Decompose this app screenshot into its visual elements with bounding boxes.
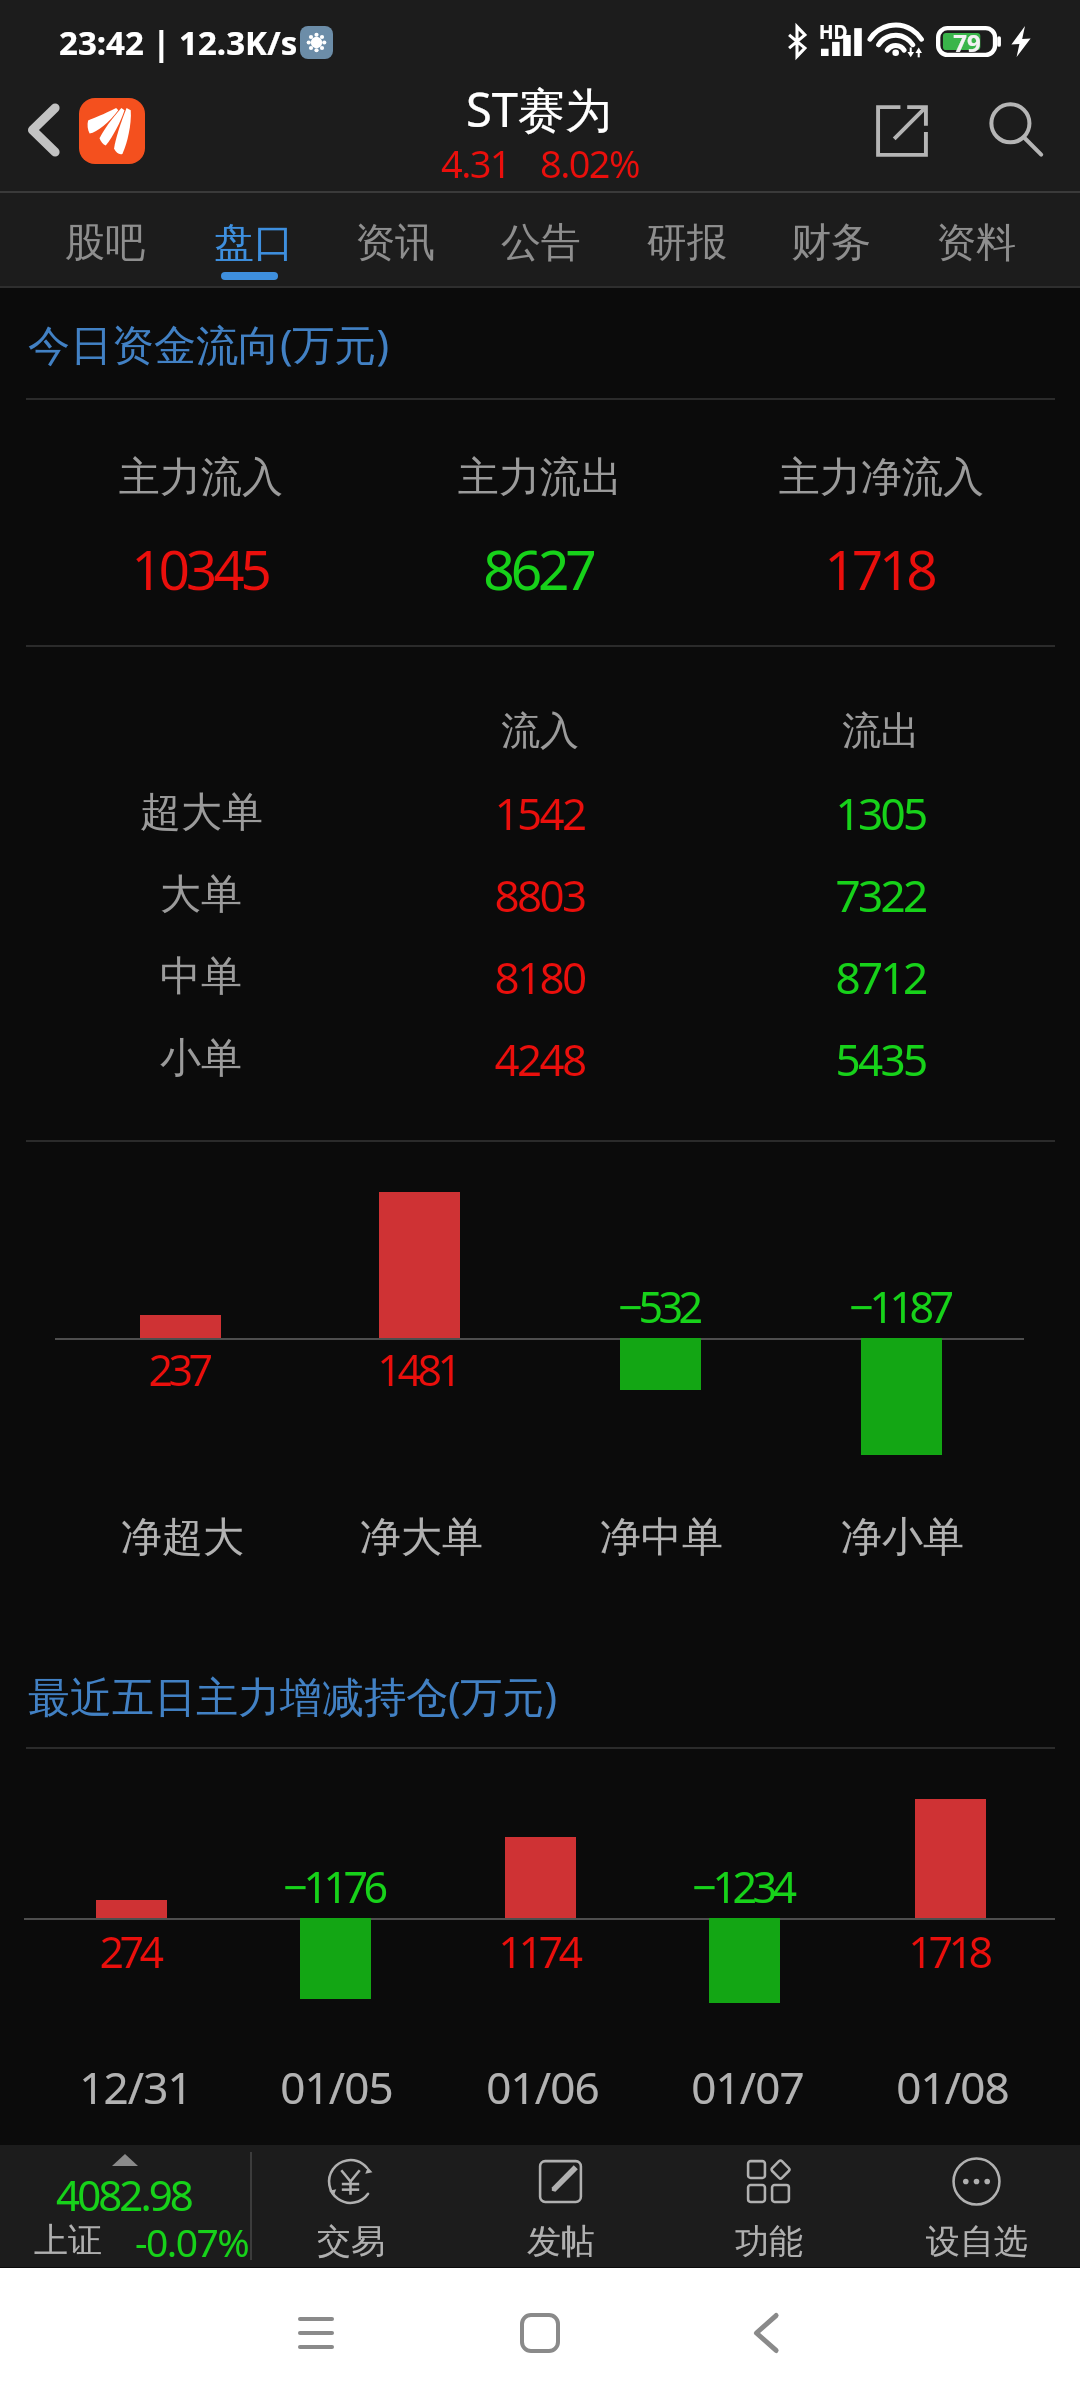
staticText: 交易 [317, 2220, 385, 2263]
staticText: 大单 [160, 869, 242, 921]
button[interactable]: Back [716, 2283, 816, 2383]
button[interactable]: Search [980, 94, 1052, 166]
staticText: −1234 [692, 1857, 793, 1916]
staticText: 1174 [498, 1922, 579, 1981]
staticText: 财务 [791, 217, 871, 267]
button[interactable]: 小单 [0, 1018, 1080, 1100]
staticText: 设自选 [926, 2220, 1028, 2263]
staticText: 资料 [936, 217, 1016, 267]
staticText: -0.07% [135, 2215, 248, 2268]
staticText: 1481 [377, 1340, 458, 1399]
staticText: −1176 [283, 1857, 384, 1916]
staticText: 10345 [131, 531, 268, 606]
button[interactable]: 研报 [617, 192, 757, 286]
staticText: 4248 [494, 1029, 585, 1089]
button[interactable]: 公告 [471, 192, 611, 286]
staticText: 功能 [735, 2220, 803, 2263]
button[interactable]: 功能 [665, 2145, 873, 2267]
button[interactable]: 4082.98 [0, 2145, 250, 2267]
button[interactable]: 主力流入 [31, 410, 371, 640]
staticText: 1718 [908, 1922, 989, 1981]
staticText: 流出 [842, 706, 920, 755]
staticText: 7322 [835, 865, 926, 925]
button[interactable]: Share [866, 95, 938, 167]
staticText: 01/08 [896, 2057, 1009, 2117]
button[interactable]: 主力流出 [370, 410, 710, 640]
button[interactable]: 资料 [906, 192, 1046, 286]
staticText: 流入 [501, 706, 579, 755]
staticText: 净超大 [121, 1512, 244, 1564]
button[interactable]: 主力净流入 [711, 410, 1051, 640]
staticText: −532 [618, 1277, 699, 1336]
staticText: HD [819, 19, 848, 45]
staticText: 8803 [494, 865, 585, 925]
button[interactable]: Recents [266, 2283, 366, 2383]
staticText: 盘口 [214, 217, 294, 267]
button[interactable]: 超大单 [0, 772, 1080, 854]
staticText: 01/06 [486, 2057, 599, 2117]
staticText: 5435 [835, 1029, 926, 1089]
staticText: 股吧 [65, 217, 145, 267]
staticText: −1187 [849, 1277, 950, 1336]
staticText: 8712 [835, 947, 926, 1007]
staticText: 主力流入 [119, 452, 283, 504]
staticText: 23:42 | 12.3K/s [59, 20, 298, 65]
button[interactable]: 盘口 [184, 192, 324, 286]
button[interactable]: 股吧 [35, 192, 175, 286]
staticText: 8.02% [540, 137, 639, 189]
staticText: 274 [99, 1922, 160, 1981]
staticText: 资讯 [355, 217, 435, 267]
staticText: 超大单 [140, 787, 263, 839]
staticText: 净小单 [841, 1512, 964, 1564]
staticText: 237 [148, 1340, 209, 1399]
button[interactable]: App home [79, 98, 145, 164]
staticText: 上证 [34, 2219, 102, 2262]
staticText: 今日资金流向(万元) [28, 315, 390, 372]
staticText: 发帖 [527, 2220, 595, 2263]
staticText: 1542 [494, 783, 585, 843]
staticText: 01/07 [691, 2057, 804, 2117]
staticText: 中单 [160, 951, 242, 1003]
button[interactable]: 大单 [0, 854, 1080, 936]
staticText: 4082.98 [56, 2166, 191, 2223]
staticText: 小单 [160, 1033, 242, 1085]
staticText: 主力净流入 [779, 452, 984, 504]
staticText: 最近五日主力增减持仓(万元) [28, 1667, 558, 1724]
button[interactable]: Back [11, 92, 75, 168]
staticText: 净大单 [360, 1512, 483, 1564]
button[interactable]: 发帖 [457, 2145, 665, 2267]
staticText: ST赛为 [466, 77, 612, 141]
staticText: 8180 [494, 947, 585, 1007]
button[interactable]: Home [490, 2283, 590, 2383]
staticText: 12/31 [79, 2057, 192, 2117]
button[interactable]: 交易 [247, 2145, 455, 2267]
staticText: 1305 [835, 783, 926, 843]
button[interactable]: 设自选 [873, 2145, 1080, 2267]
staticText: 4.31 [441, 137, 510, 189]
button[interactable]: 中单 [0, 936, 1080, 1018]
staticText: 79 [953, 26, 981, 59]
staticText: 8627 [483, 531, 593, 606]
staticText: 研报 [647, 217, 727, 267]
button[interactable]: 资讯 [325, 192, 465, 286]
staticText: 公告 [501, 217, 581, 267]
staticText: 01/05 [280, 2057, 393, 2117]
button[interactable]: 财务 [761, 192, 901, 286]
staticText: 净中单 [600, 1512, 723, 1564]
staticText: 1718 [824, 531, 934, 606]
staticText: 主力流出 [458, 452, 622, 504]
